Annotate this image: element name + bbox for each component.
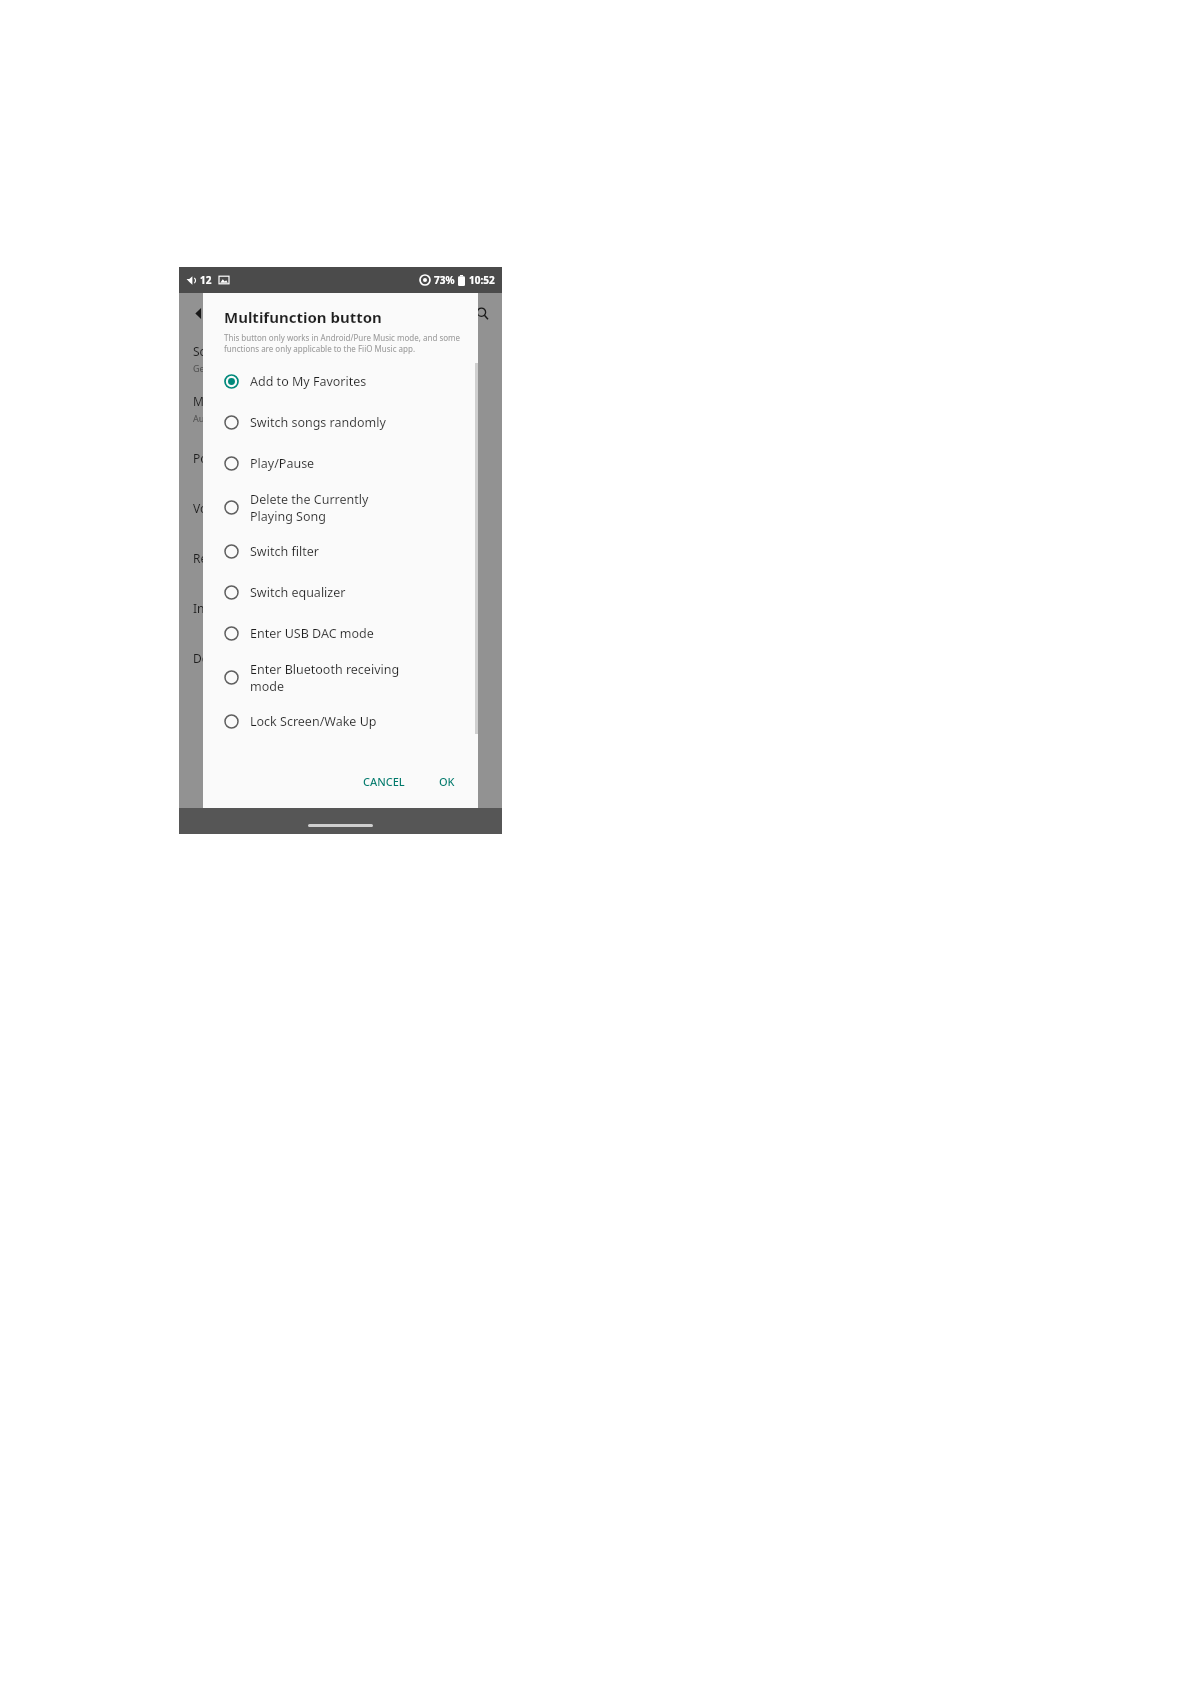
staticText: 10:52 (469, 273, 495, 287)
staticText: Power (193, 450, 229, 466)
button[interactable]: Back (187, 301, 211, 325)
button[interactable]: Delete the Currently Playing Song (203, 484, 478, 531)
staticText: Screen (193, 343, 232, 359)
button[interactable]: Screen (179, 333, 502, 383)
button[interactable]: Switch filter (203, 531, 478, 572)
staticText: Volume (193, 500, 236, 516)
staticText: 12 (200, 273, 212, 287)
staticText: This button only works in Android/Pure M… (224, 332, 466, 354)
staticText: General (193, 362, 227, 374)
staticText: Reset (193, 550, 225, 566)
staticText: Input (193, 600, 224, 616)
staticText: CANCEL (363, 774, 405, 789)
staticText: Lock Screen/Wake Up (250, 713, 377, 730)
button[interactable]: Input (179, 583, 502, 633)
staticText: OK (439, 774, 455, 789)
button[interactable]: Switch songs randomly (203, 402, 478, 443)
button[interactable]: Enter Bluetooth receiving mode (203, 654, 478, 701)
staticText: Multifunction button (224, 307, 382, 327)
button[interactable]: OK (430, 769, 464, 794)
staticText: Device (193, 650, 231, 666)
button[interactable]: CANCEL (354, 769, 414, 794)
staticText: Play/Pause (250, 455, 315, 472)
staticText: Switch filter (250, 543, 319, 560)
staticText: Switch equalizer (250, 584, 346, 601)
staticText: 73% (434, 273, 455, 287)
button[interactable]: Volume (179, 483, 502, 533)
button[interactable]: Power (179, 433, 502, 483)
button[interactable]: Search (470, 301, 494, 325)
button[interactable]: Add to My Favorites (203, 361, 478, 402)
staticText: Switch songs randomly (250, 414, 386, 431)
staticText: Add to My Favorites (250, 373, 367, 390)
staticText: Delete the Currently Playing Song (250, 491, 369, 524)
staticText: Music (193, 393, 226, 409)
button[interactable]: Lock Screen/Wake Up (203, 701, 478, 742)
button[interactable]: Device (179, 633, 502, 683)
staticText: Enter Bluetooth receiving mode (250, 661, 400, 694)
button[interactable]: Reset (179, 533, 502, 583)
staticText: Audio (193, 412, 218, 424)
button[interactable]: Switch equalizer (203, 572, 478, 613)
button[interactable]: Music (179, 383, 502, 433)
button[interactable]: Play/Pause (203, 443, 478, 484)
staticText: Enter USB DAC mode (250, 625, 374, 642)
button[interactable]: Enter USB DAC mode (203, 613, 478, 654)
